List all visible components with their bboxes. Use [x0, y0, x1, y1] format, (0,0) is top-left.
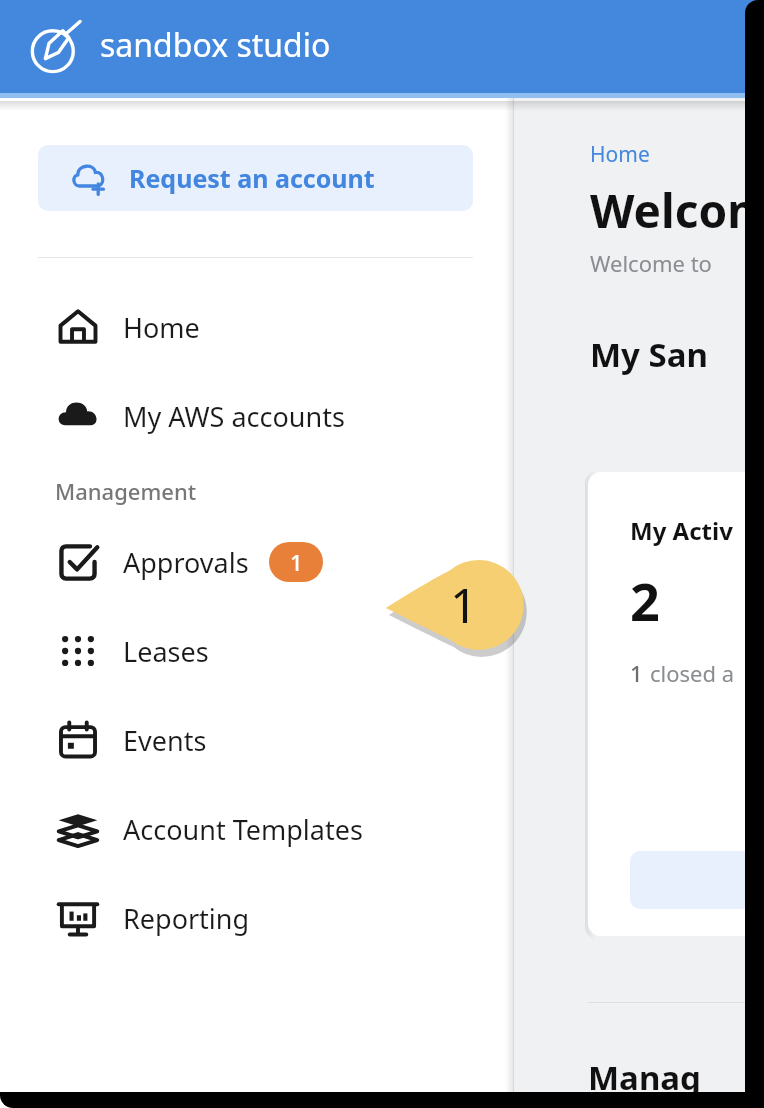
staticText: Leases	[123, 633, 209, 670]
staticText: sandbox studio	[100, 23, 331, 67]
staticText: Reporting	[123, 900, 250, 937]
staticText: 2	[630, 565, 660, 636]
staticText: Events	[123, 722, 207, 759]
staticText: closed a	[650, 658, 735, 688]
staticText: My Activ	[630, 514, 733, 547]
button[interactable]: Account Templates	[0, 801, 764, 857]
button[interactable]: My AWS accounts	[0, 388, 764, 444]
button[interactable]: My Activ	[588, 472, 764, 936]
staticText: 1	[450, 572, 478, 637]
staticText: Approvals	[123, 544, 249, 581]
button[interactable]: Approvals	[0, 534, 764, 590]
staticText: Manag	[588, 1055, 701, 1100]
staticText: 1	[630, 658, 643, 688]
staticText: Home	[123, 309, 200, 346]
staticText: 1	[290, 547, 303, 577]
button[interactable]: Request an account	[38, 145, 473, 211]
button[interactable]: Home	[0, 299, 764, 355]
staticText: My AWS accounts	[123, 398, 345, 435]
staticText: Welcome	[590, 179, 764, 242]
button[interactable]: Reporting	[0, 890, 764, 946]
staticText: Request an account	[129, 161, 375, 195]
button[interactable]	[630, 851, 764, 909]
staticText: Management	[55, 476, 197, 506]
staticText: My San	[590, 332, 708, 377]
button[interactable]: Events	[0, 712, 764, 768]
staticText: Account Templates	[123, 811, 363, 848]
staticText: Home	[590, 140, 650, 169]
other: Sandbox Studio logo	[28, 14, 90, 76]
staticText: Welcome to	[590, 248, 712, 278]
button[interactable]: Leases	[0, 623, 764, 679]
